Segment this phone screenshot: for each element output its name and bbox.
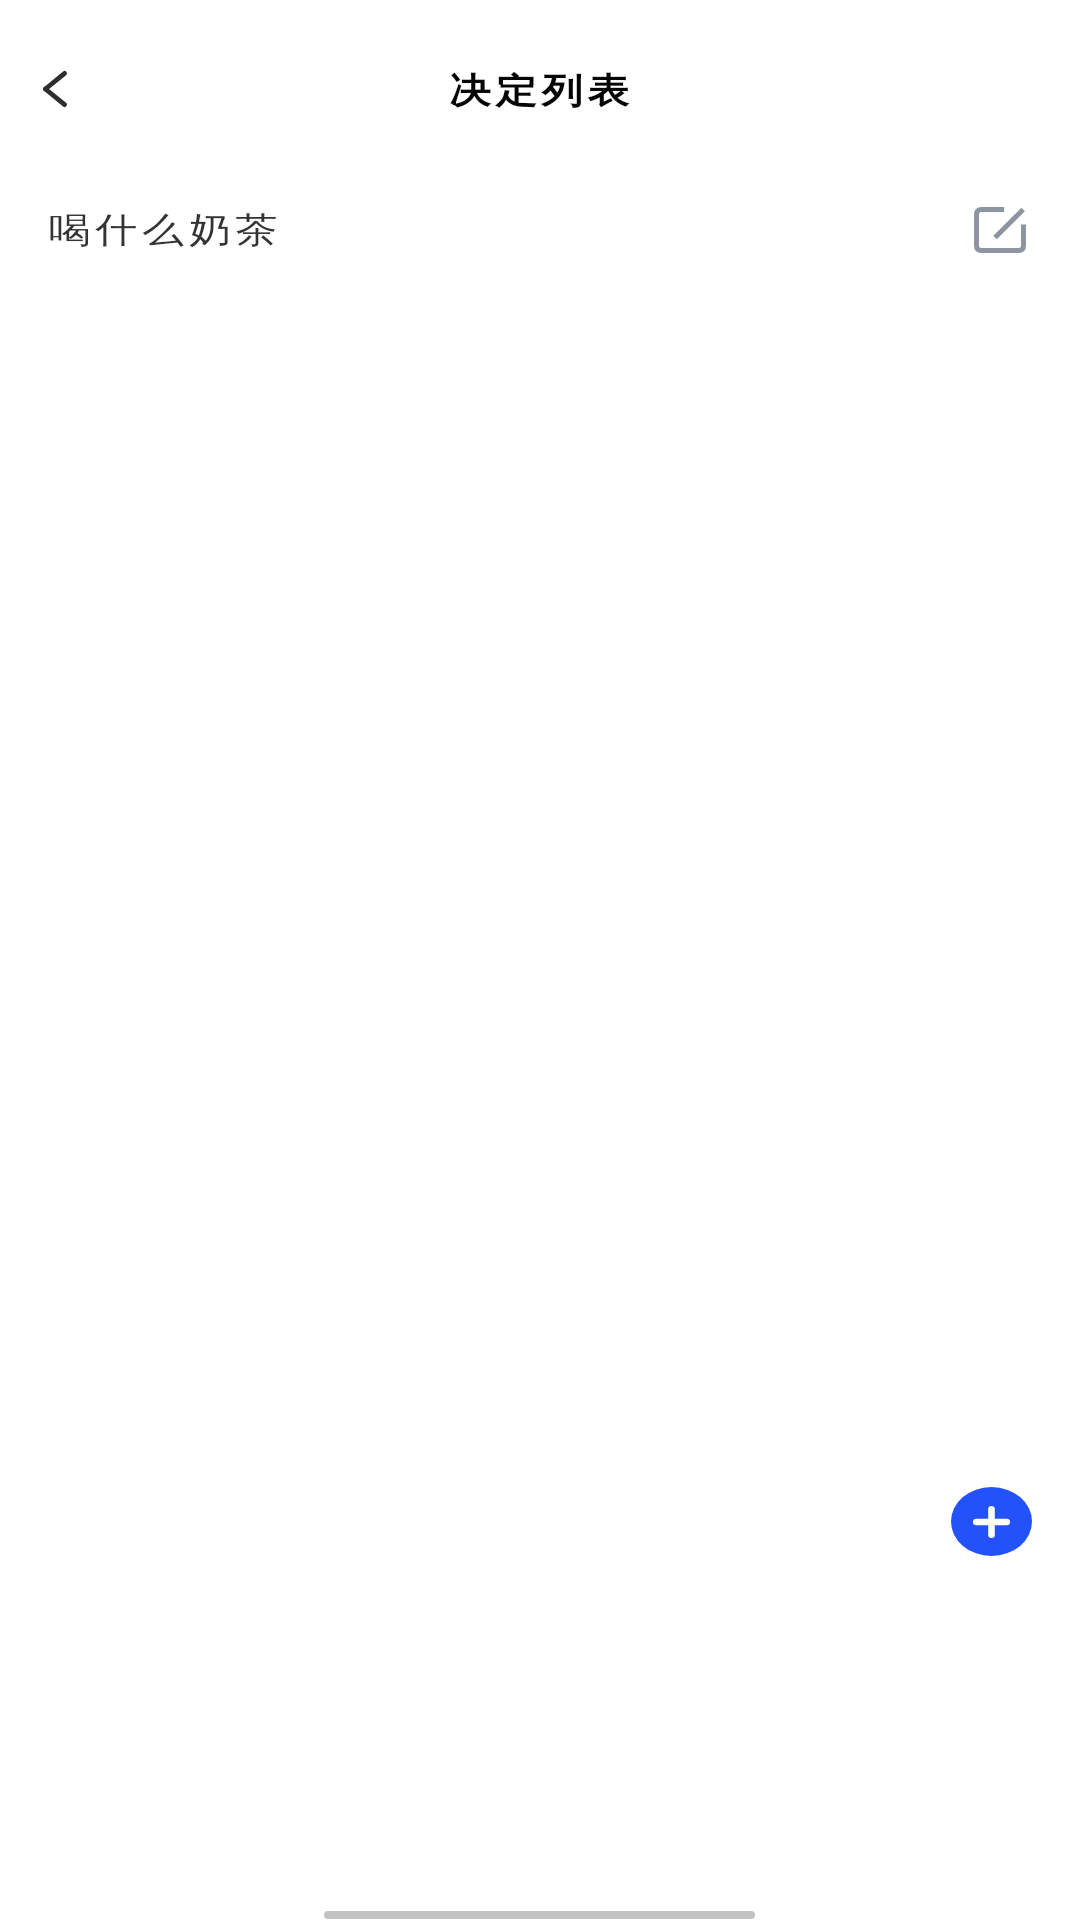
button[interactable]: Add decision: [951, 1487, 1032, 1556]
button[interactable]: Edit: [957, 187, 1043, 273]
staticText: 喝什么奶茶: [46, 208, 280, 252]
button[interactable]: 喝什么奶茶: [0, 176, 1080, 284]
button[interactable]: Back: [10, 44, 100, 134]
staticText: 决定列表: [447, 69, 631, 113]
